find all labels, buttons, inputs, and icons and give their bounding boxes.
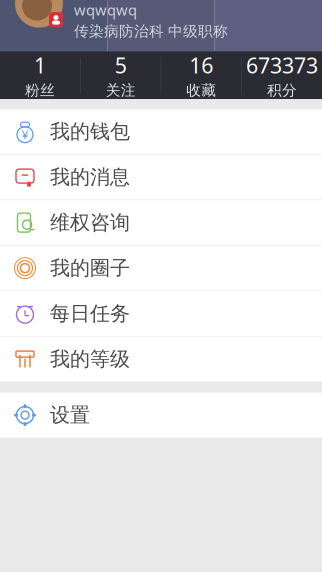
button[interactable]: ¥ [0,109,322,155]
button[interactable]: 每日任务 [0,291,322,337]
button[interactable]: 我的等级 [0,337,322,382]
staticText: 我的圈子 [50,256,130,280]
staticText: 关注 [106,81,136,99]
staticText: 1 [34,51,46,79]
button[interactable]: 16 [161,51,241,99]
button[interactable]: 我的圈子 [0,246,322,291]
staticText: 粉丝 [25,81,55,99]
staticText: 收藏 [186,81,216,99]
button[interactable]: 维权咨询 [0,200,322,246]
button[interactable]: 673373 [242,51,322,99]
button[interactable]: 1 [0,51,80,99]
button[interactable]: 我的消息 [0,155,322,200]
staticText: 16 [189,51,213,79]
staticText: 我的等级 [50,347,130,371]
button[interactable]: 设置 [0,393,322,438]
staticText: ¥ [21,127,28,143]
staticText: wqwqwq [74,0,137,19]
staticText: 每日任务 [50,301,130,326]
staticText: 维权咨询 [50,210,130,235]
button[interactable]: 5 [81,51,161,99]
staticText: 673373 [246,51,318,79]
staticText: 积分 [267,81,297,99]
staticText: 我的消息 [50,165,130,189]
staticText: 我的钱包 [50,119,130,144]
staticText: 传染病防治科 中级职称 [74,22,228,40]
staticText: 5 [115,51,127,79]
staticText: 设置 [50,403,90,427]
